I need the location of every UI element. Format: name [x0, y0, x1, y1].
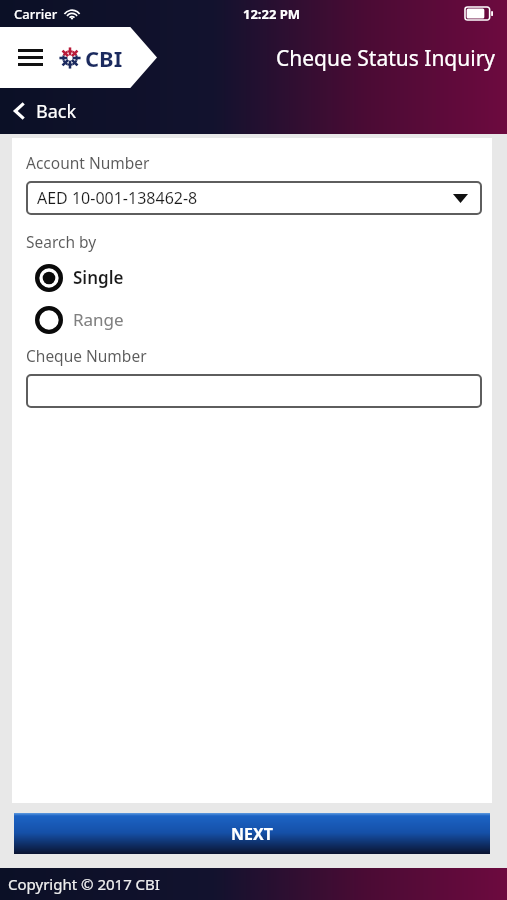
staticText: Back: [36, 99, 77, 124]
staticText: Carrier: [14, 5, 58, 23]
button[interactable]: AED 10-001-138462-8: [26, 181, 482, 215]
button[interactable]: [26, 374, 482, 408]
staticText: NEXT: [231, 823, 273, 845]
button[interactable]: Back: [12, 88, 77, 134]
staticText: CBI: [85, 43, 123, 73]
staticText: Range: [73, 308, 124, 331]
staticText: Single: [73, 266, 124, 289]
staticText: Copyright © 2017 CBI: [8, 874, 160, 894]
button[interactable]: Range: [35, 302, 124, 337]
staticText: Account Number: [26, 152, 150, 173]
staticText: AED 10-001-138462-8: [37, 187, 198, 209]
staticText: Search by: [26, 231, 97, 252]
button[interactable]: Menu: [0, 27, 157, 88]
staticText: Cheque Number: [26, 345, 147, 366]
button[interactable]: NEXT: [14, 813, 490, 854]
staticText: Cheque Status Inquiry: [276, 44, 496, 73]
button[interactable]: Single: [35, 260, 124, 295]
staticText: 12:22 PM: [243, 5, 301, 23]
